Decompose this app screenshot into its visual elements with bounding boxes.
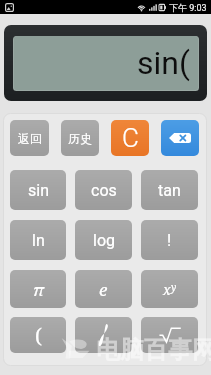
- button[interactable]: 历史: [61, 120, 99, 156]
- button[interactable]: [75, 317, 132, 353]
- staticText: tan: [158, 181, 181, 200]
- button[interactable]: [141, 317, 198, 353]
- button[interactable]: x: [141, 270, 198, 308]
- staticText: 下午 9:03: [169, 2, 207, 13]
- button[interactable]: cos: [75, 170, 132, 210]
- staticText: 历史: [68, 131, 92, 146]
- staticText: ln: [32, 231, 45, 250]
- staticText: !: [167, 231, 172, 250]
- button[interactable]: 返回: [10, 120, 49, 156]
- staticText: sin(: [137, 44, 190, 82]
- button[interactable]: C: [111, 120, 149, 156]
- button[interactable]: (: [10, 317, 66, 353]
- button[interactable]: Backspace: [161, 120, 199, 156]
- button[interactable]: tan: [141, 170, 198, 210]
- staticText: π: [33, 278, 44, 301]
- staticText: (: [35, 322, 42, 349]
- staticText: 返回: [18, 131, 42, 146]
- staticText: 电脑百事网: [96, 335, 211, 365]
- staticText: C: [122, 123, 139, 153]
- staticText: e: [99, 278, 108, 301]
- staticText: cos: [91, 181, 117, 200]
- button[interactable]: ln: [10, 220, 66, 260]
- staticText: y: [171, 280, 177, 294]
- button[interactable]: e: [75, 270, 132, 308]
- button[interactable]: π: [10, 270, 66, 308]
- staticText: x: [163, 280, 171, 299]
- staticText: sin: [28, 181, 49, 200]
- button[interactable]: !: [141, 220, 198, 260]
- staticText: log: [93, 231, 115, 250]
- button[interactable]: log: [75, 220, 132, 260]
- button[interactable]: sin: [10, 170, 66, 210]
